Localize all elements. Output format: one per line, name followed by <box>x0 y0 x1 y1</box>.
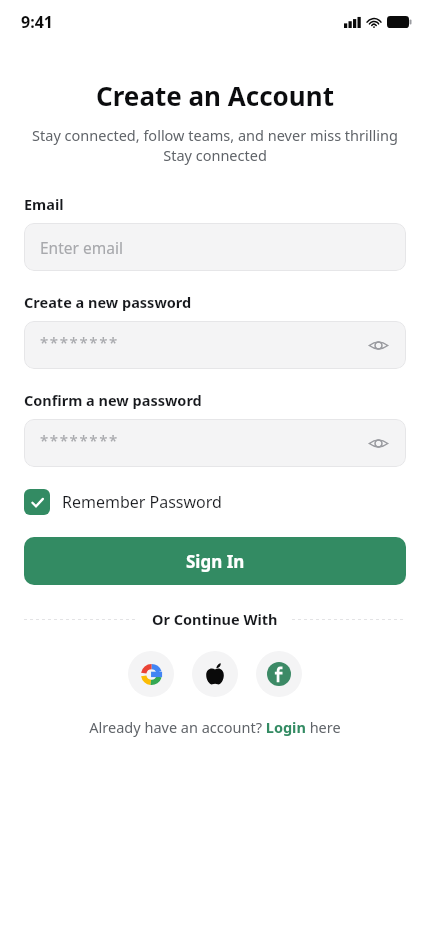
button[interactable]: ******** <box>24 321 406 369</box>
button[interactable]: Sign in with Google <box>128 651 174 697</box>
staticText: Confirm a new password <box>24 390 202 410</box>
staticText: Sign In <box>186 550 245 573</box>
staticText: Enter email <box>40 237 123 258</box>
button[interactable]: Enter email <box>24 223 406 271</box>
staticText: Create an Account <box>0 78 430 113</box>
button[interactable]: Show password <box>362 329 394 361</box>
button[interactable]: Sign in with Facebook <box>256 651 302 697</box>
staticText: Create a new password <box>24 292 192 312</box>
staticText: Already have an account? Login here <box>89 717 341 737</box>
staticText: Stay connected, follow teams, and never … <box>30 125 400 166</box>
button[interactable]: Sign In <box>24 537 406 585</box>
staticText: ******** <box>40 430 119 450</box>
staticText: 9:41 <box>21 11 53 33</box>
staticText: Or Continue With <box>152 609 278 629</box>
button[interactable]: ******** <box>24 419 406 467</box>
staticText: Remember Password <box>62 491 222 513</box>
staticText: Email <box>24 194 64 214</box>
button[interactable]: Already have an account? Login here <box>24 717 406 737</box>
button[interactable]: Remember Password <box>24 489 222 515</box>
button[interactable]: Sign in with Apple <box>192 651 238 697</box>
staticText: ******** <box>40 332 119 352</box>
button[interactable]: Show password <box>362 427 394 459</box>
